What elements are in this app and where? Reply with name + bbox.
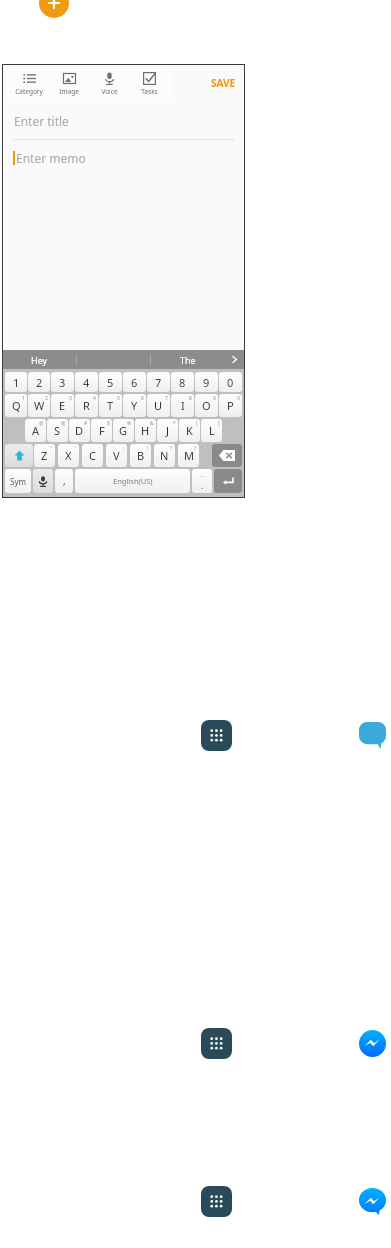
- staticText: 7: [165, 395, 168, 402]
- button[interactable]: L: [201, 419, 222, 442]
- staticText: Enter title: [14, 113, 69, 129]
- button[interactable]: Messenger: [359, 722, 386, 749]
- button[interactable]: M: [178, 444, 199, 467]
- button[interactable]: 5: [99, 372, 122, 392]
- staticText: S: [54, 423, 61, 438]
- staticText: 1: [13, 375, 20, 390]
- button[interactable]: The: [151, 350, 224, 369]
- button[interactable]: Voice: [89, 69, 129, 98]
- button[interactable]: S: [47, 419, 68, 442]
- staticText: Y: [131, 398, 138, 413]
- staticText: M: [184, 448, 194, 463]
- staticText: 5: [117, 395, 120, 402]
- staticText: Tasks: [141, 87, 158, 96]
- staticText: I: [112, 354, 116, 366]
- button[interactable]: I: [77, 350, 150, 369]
- staticText: SAVE: [211, 76, 236, 90]
- staticText: !: [147, 445, 149, 452]
- staticText: 3: [69, 395, 72, 402]
- button[interactable]: B: [130, 444, 151, 467]
- button[interactable]: X: [58, 444, 79, 467]
- staticText: ,: [63, 474, 66, 488]
- button[interactable]: P: [219, 394, 242, 417]
- button[interactable]: ...: [192, 469, 212, 493]
- button[interactable]: O: [195, 394, 218, 417]
- button[interactable]: Messenger: [359, 1030, 386, 1057]
- button[interactable]: Hey: [3, 350, 76, 369]
- button[interactable]: SAVE: [211, 76, 236, 90]
- button[interactable]: 2: [28, 372, 50, 392]
- staticText: 6: [131, 375, 138, 390]
- button[interactable]: Apps: [201, 1186, 232, 1217]
- button[interactable]: Image: [49, 69, 89, 98]
- staticText: The: [180, 354, 196, 366]
- button[interactable]: 9: [195, 372, 218, 392]
- staticText: Enter memo: [16, 150, 86, 166]
- staticText: 2: [45, 395, 48, 402]
- button[interactable]: W: [28, 394, 50, 417]
- button[interactable]: Backspace: [212, 444, 242, 467]
- button[interactable]: English(US): [75, 469, 190, 493]
- button[interactable]: 0: [219, 372, 242, 392]
- button[interactable]: Add: [39, 0, 69, 18]
- button[interactable]: Apps: [201, 720, 232, 751]
- staticText: I: [181, 398, 185, 413]
- button[interactable]: T: [99, 394, 122, 417]
- staticText: ?: [194, 445, 197, 452]
- button[interactable]: 4: [75, 372, 98, 392]
- staticText: 8: [179, 375, 186, 390]
- button[interactable]: G: [113, 419, 134, 442]
- button[interactable]: Shift: [5, 444, 33, 467]
- button[interactable]: J: [157, 419, 178, 442]
- staticText: 1: [22, 395, 25, 402]
- staticText: ;: [123, 445, 125, 452]
- staticText: :: [99, 445, 101, 452]
- staticText: ?: [170, 445, 173, 452]
- button[interactable]: Apps: [201, 1028, 232, 1059]
- staticText: T: [107, 398, 114, 413]
- staticText: ...: [200, 471, 205, 479]
- staticText: N: [160, 448, 169, 463]
- staticText: Category: [15, 87, 43, 96]
- button[interactable]: Sym: [5, 469, 31, 493]
- button[interactable]: I: [171, 394, 194, 417]
- button[interactable]: Z: [34, 444, 55, 467]
- button[interactable]: N: [154, 444, 175, 467]
- button[interactable]: ,: [55, 469, 73, 493]
- button[interactable]: Category: [9, 69, 49, 98]
- button[interactable]: 6: [123, 372, 146, 392]
- button[interactable]: 3: [51, 372, 74, 392]
- button[interactable]: Enter: [214, 469, 242, 493]
- button[interactable]: Y: [123, 394, 146, 417]
- button[interactable]: More suggestions: [224, 350, 244, 369]
- staticText: L: [209, 423, 215, 438]
- button[interactable]: E: [51, 394, 74, 417]
- staticText: C: [89, 448, 96, 463]
- button[interactable]: R: [75, 394, 98, 417]
- button[interactable]: D: [69, 419, 90, 442]
- button[interactable]: Q: [5, 394, 27, 417]
- staticText: 6: [141, 395, 144, 402]
- button[interactable]: 7: [147, 372, 170, 392]
- button[interactable]: 8: [171, 372, 194, 392]
- button[interactable]: F: [91, 419, 112, 442]
- button[interactable]: A: [25, 419, 46, 442]
- staticText: V: [113, 448, 120, 463]
- button[interactable]: Tasks: [129, 69, 169, 98]
- button[interactable]: Messenger: [359, 1188, 386, 1215]
- button[interactable]: U: [147, 394, 170, 417]
- staticText: Q: [12, 398, 21, 413]
- button[interactable]: Voice input: [33, 469, 53, 493]
- button[interactable]: K: [179, 419, 200, 442]
- staticText: K: [186, 423, 193, 438]
- button[interactable]: V: [106, 444, 127, 467]
- button[interactable]: H: [135, 419, 156, 442]
- staticText: 3: [59, 375, 66, 390]
- staticText: 8: [189, 395, 192, 402]
- staticText: 9: [203, 375, 210, 390]
- staticText: W: [34, 398, 45, 413]
- button[interactable]: C: [82, 444, 103, 467]
- button[interactable]: 1: [5, 372, 27, 392]
- staticText: 4: [83, 375, 90, 390]
- staticText: A: [32, 423, 40, 438]
